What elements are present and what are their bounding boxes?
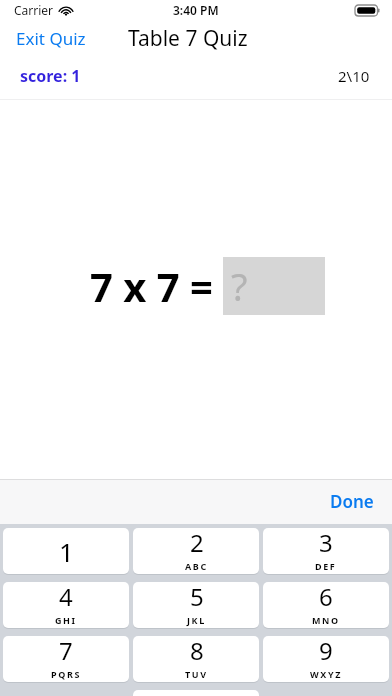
staticText: 9	[319, 636, 333, 667]
staticText: ABC	[185, 560, 208, 572]
button[interactable]: 8	[133, 636, 259, 682]
button[interactable]: 2	[133, 528, 259, 574]
staticText: Table 7 Quiz	[128, 24, 248, 53]
staticText: 1	[59, 534, 74, 569]
staticText: TUV	[185, 668, 208, 680]
button[interactable]: 7	[3, 636, 129, 682]
staticText: MNO	[312, 614, 340, 626]
button[interactable]: 0	[133, 690, 259, 696]
button[interactable]: 4	[3, 582, 129, 628]
button[interactable]: 3	[263, 528, 389, 574]
staticText: DEF	[315, 560, 337, 572]
button[interactable]: 5	[133, 582, 259, 628]
staticText: JKL	[187, 614, 206, 626]
staticText: 3:40 PM	[173, 2, 219, 18]
staticText: Carrier	[14, 2, 54, 18]
button[interactable]: 1	[3, 528, 129, 574]
staticText: 7 x 7 =	[90, 259, 213, 313]
staticText: Done	[330, 490, 374, 513]
staticText: GHI	[55, 614, 77, 626]
button[interactable]: Done	[312, 482, 392, 521]
button[interactable]: Exit Quiz	[0, 21, 102, 56]
staticText: 5	[190, 582, 204, 613]
staticText: 2	[190, 528, 204, 559]
staticText: ?	[231, 260, 248, 312]
staticText: 8	[190, 636, 204, 667]
staticText: 4	[59, 582, 73, 613]
staticText: Exit Quiz	[16, 27, 86, 50]
button[interactable]: 9	[263, 636, 389, 682]
button[interactable]: ?	[223, 257, 325, 315]
staticText: 7	[59, 636, 73, 667]
staticText: PQRS	[51, 668, 81, 680]
staticText: WXYZ	[310, 668, 342, 680]
staticText: score: 1	[20, 65, 81, 87]
staticText: 6	[319, 582, 333, 613]
staticText: 2\10	[338, 66, 370, 86]
staticText: 3	[319, 528, 333, 559]
button[interactable]: 6	[263, 582, 389, 628]
